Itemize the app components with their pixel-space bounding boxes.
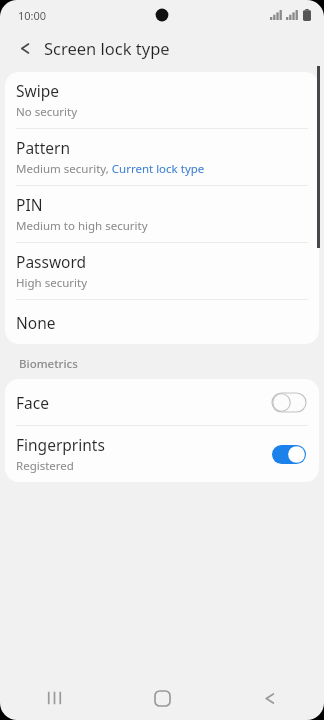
button[interactable]: Swipe — [5, 72, 319, 128]
button[interactable]: Fingerprints — [5, 426, 319, 482]
staticText: PIN — [16, 194, 43, 215]
staticText: No security — [16, 104, 78, 120]
staticText: Screen lock type — [44, 37, 170, 59]
staticText: Password — [16, 251, 87, 272]
button[interactable]: Recent apps — [0, 676, 108, 720]
button[interactable]: None — [5, 300, 319, 344]
button[interactable]: Password — [5, 243, 319, 299]
staticText: Biometrics — [19, 356, 78, 372]
staticText: None — [16, 312, 56, 333]
button[interactable]: Toggle on — [270, 442, 308, 466]
staticText: Swipe — [16, 80, 59, 101]
staticText: 10:00 — [18, 8, 47, 23]
button[interactable]: Back — [8, 31, 42, 65]
button[interactable]: Back — [216, 676, 324, 720]
button[interactable]: Pattern — [5, 129, 319, 185]
button[interactable]: Toggle off — [270, 390, 308, 414]
button[interactable]: Home — [108, 676, 216, 720]
staticText: Face — [16, 392, 49, 413]
staticText: Medium security, Current lock type — [16, 161, 205, 177]
staticText: Registered — [16, 458, 74, 474]
staticText: Medium to high security — [16, 218, 148, 234]
button[interactable]: PIN — [5, 186, 319, 242]
button[interactable]: Face — [5, 379, 319, 425]
staticText: Fingerprints — [16, 434, 105, 455]
staticText: High security — [16, 275, 88, 291]
staticText: Pattern — [16, 137, 70, 158]
